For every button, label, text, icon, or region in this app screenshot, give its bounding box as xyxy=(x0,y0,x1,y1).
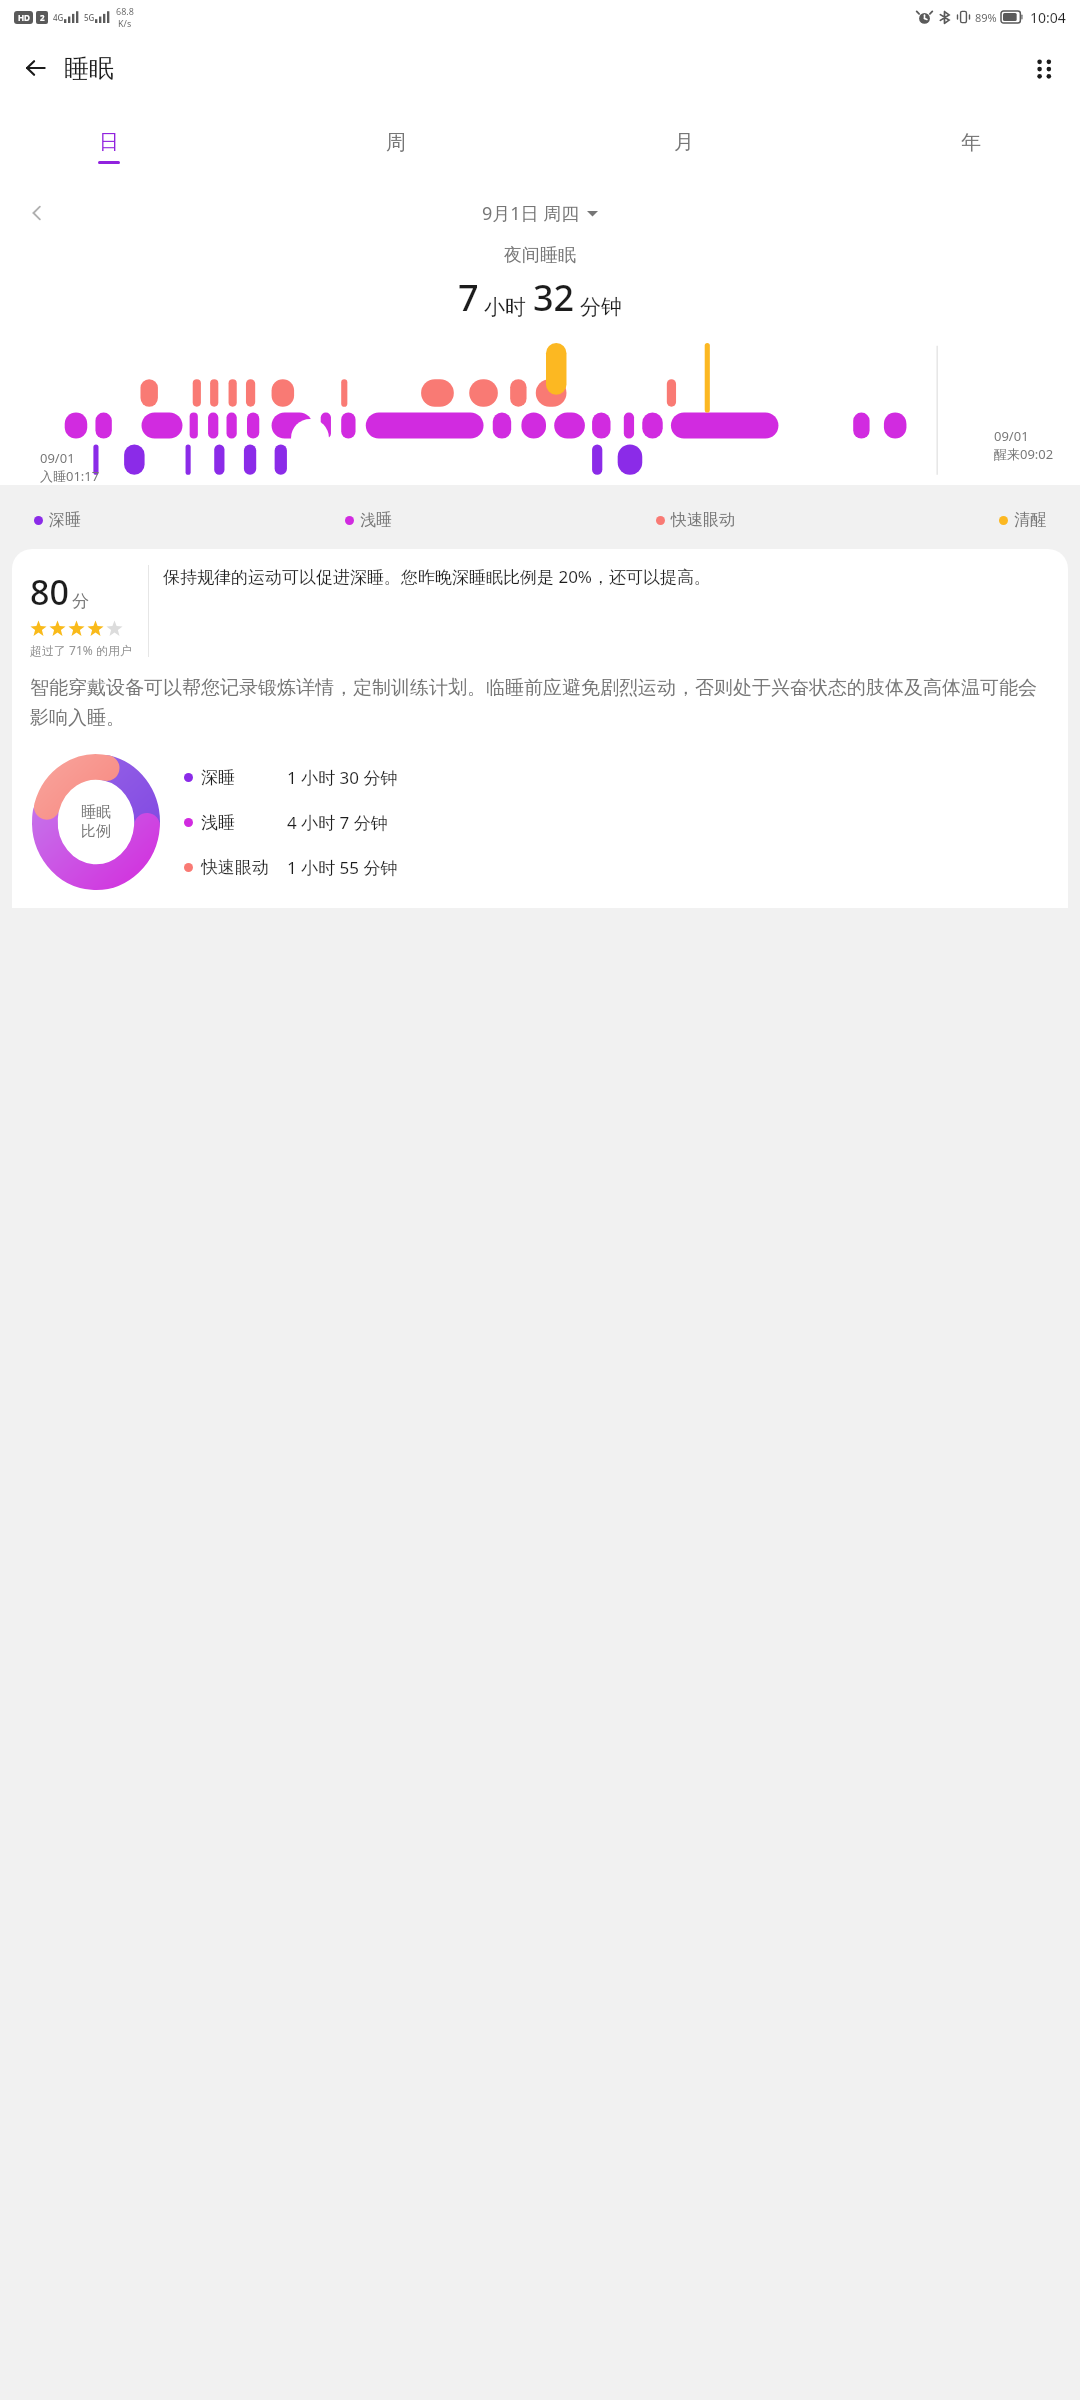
staticText: 09/01 xyxy=(40,449,75,467)
button[interactable]: Back xyxy=(12,44,60,92)
staticText: 快速眼动 xyxy=(671,510,735,530)
staticText: 月 xyxy=(674,130,694,155)
staticText: 日 xyxy=(99,130,119,155)
staticText: 5G xyxy=(84,12,95,23)
button[interactable]: More options xyxy=(1020,44,1068,92)
staticText: HD xyxy=(18,12,30,23)
button[interactable]: 周 xyxy=(375,128,417,166)
button[interactable]: 月 xyxy=(663,128,705,166)
button[interactable]: 快速眼动 xyxy=(656,507,735,533)
staticText: 68.8 xyxy=(116,5,134,17)
staticText: 浅睡 xyxy=(360,510,392,530)
staticText: 1 小时 55 分钟 xyxy=(287,856,398,879)
staticText: 09/01 xyxy=(994,427,1029,445)
staticText: 4 小时 7 分钟 xyxy=(287,811,388,834)
staticText: 清醒 xyxy=(1014,510,1046,530)
staticText: 9月1日 周四 xyxy=(482,201,580,226)
staticText: 32 xyxy=(533,273,575,322)
staticText: 2 xyxy=(40,12,45,23)
staticText: 深睡 xyxy=(49,510,81,530)
staticText: 1 小时 30 分钟 xyxy=(287,766,398,789)
button[interactable]: 清醒 xyxy=(999,507,1046,533)
staticText: 浅睡 xyxy=(201,812,287,833)
staticText: 10:04 xyxy=(1030,8,1066,27)
staticText: 小时 xyxy=(484,294,526,320)
button[interactable]: 浅睡 xyxy=(345,507,392,533)
button[interactable]: 深睡 xyxy=(184,766,1050,789)
staticText: 保持规律的运动可以促进深睡。您昨晚深睡眠比例是 20%，还可以提高。 xyxy=(163,565,711,588)
staticText: 4G xyxy=(53,12,64,23)
staticText: 周 xyxy=(386,130,406,155)
button[interactable]: 深睡 xyxy=(34,507,81,533)
button[interactable]: Previous day xyxy=(22,198,52,228)
button[interactable]: 9月1日 周四 xyxy=(478,197,602,230)
staticText: 年 xyxy=(961,130,981,155)
button[interactable]: 年 xyxy=(950,128,992,166)
staticText: 分钟 xyxy=(580,294,622,320)
staticText: 睡眠 xyxy=(64,53,114,84)
staticText: K/s xyxy=(118,17,132,29)
staticText: 醒来09:02 xyxy=(994,445,1054,463)
staticText: 超过了 71% 的用户 xyxy=(30,642,132,658)
button[interactable]: 日 xyxy=(88,128,130,166)
button[interactable]: 快速眼动 xyxy=(184,856,1050,879)
staticText: 7 xyxy=(458,273,479,322)
staticText: 夜间睡眠 xyxy=(504,244,576,267)
staticText: 89% xyxy=(975,10,997,25)
staticText: 入睡01:17 xyxy=(40,467,100,485)
staticText: 快速眼动 xyxy=(201,857,287,878)
button[interactable]: 浅睡 xyxy=(184,811,1050,834)
button[interactable]: Expand details xyxy=(291,419,329,457)
staticText: 比例 xyxy=(81,822,111,841)
staticText: 分 xyxy=(72,591,89,612)
staticText: 睡眠 xyxy=(81,803,111,822)
staticText: 80 xyxy=(30,569,69,615)
staticText: 深睡 xyxy=(201,767,287,788)
staticText: 智能穿戴设备可以帮您记录锻炼详情，定制训练计划。临睡前应避免剧烈运动，否则处于兴… xyxy=(30,676,1050,730)
